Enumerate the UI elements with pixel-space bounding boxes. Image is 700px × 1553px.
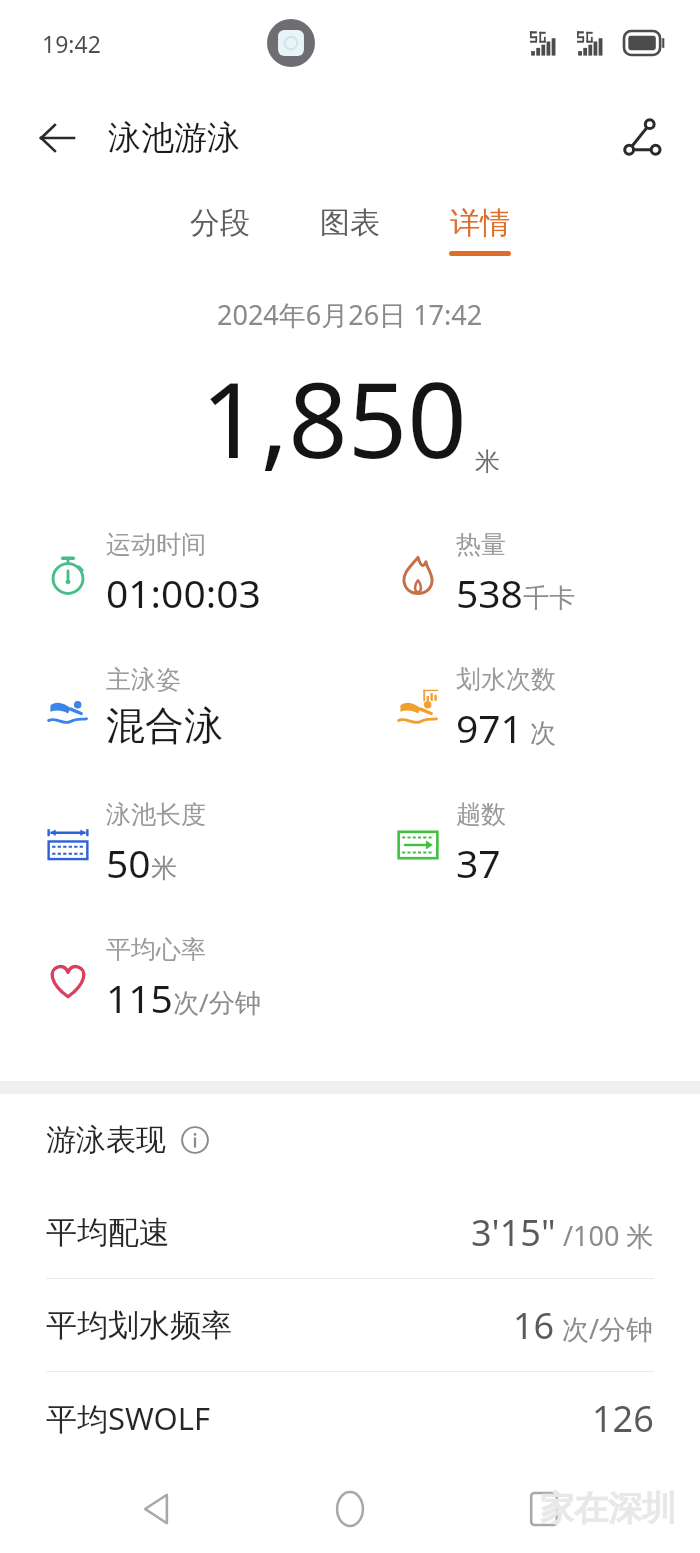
staticText: 538 — [456, 566, 523, 619]
button[interactable]: 平均划水频率 — [0, 1279, 700, 1371]
staticText: 2024年6月26日 17:42 — [217, 296, 483, 333]
button[interactable]: 分段 — [181, 200, 259, 260]
staticText: 米 — [151, 852, 177, 885]
button[interactable]: 趟数 — [350, 789, 700, 924]
button[interactable]: 运动时间 — [0, 519, 350, 654]
staticText: 图表 — [320, 204, 380, 242]
staticText: 泳池长度 — [106, 799, 206, 830]
button[interactable]: 详情 — [441, 200, 519, 260]
button[interactable]: 泳池长度 — [0, 789, 350, 924]
button[interactable]: Back — [28, 109, 86, 167]
staticText: 分段 — [190, 204, 250, 242]
button[interactable]: Share — [612, 107, 674, 169]
button[interactable]: 主泳姿 — [0, 654, 350, 789]
staticText: 115 — [106, 971, 173, 1024]
staticText: 运动时间 — [106, 529, 206, 560]
staticText: 16 — [513, 1301, 555, 1350]
staticText: 次/分钟 — [173, 984, 261, 1020]
button[interactable]: 平均SWOLF — [0, 1372, 700, 1464]
staticText: 3'15" — [471, 1208, 556, 1257]
staticText: 平均SWOLF — [46, 1397, 211, 1439]
staticText: 平均心率 — [106, 934, 206, 965]
staticText: 趟数 — [456, 799, 506, 830]
staticText: 01:00:03 — [106, 566, 261, 619]
button[interactable]: Back — [118, 1471, 194, 1547]
staticText: 米 — [475, 446, 500, 477]
button[interactable]: 平均心率 — [0, 924, 350, 1059]
staticText: 19:42 — [42, 28, 101, 59]
staticText: 详情 — [450, 204, 510, 242]
button[interactable]: 划水次数 — [350, 654, 700, 789]
staticText: 划水次数 — [456, 664, 556, 695]
staticText: 主泳姿 — [106, 664, 181, 695]
staticText: 971 — [456, 701, 523, 754]
staticText: 泳池游泳 — [108, 117, 240, 159]
staticText: 家在深圳 — [540, 1487, 676, 1530]
staticText: 37 — [456, 836, 501, 889]
staticText: 次 — [523, 714, 556, 750]
staticText: 游泳表现 — [46, 1121, 166, 1159]
button[interactable]: Home — [312, 1471, 388, 1547]
staticText: 次/分钟 — [555, 1310, 654, 1347]
staticText: /100 米 — [556, 1217, 654, 1254]
staticText: 平均划水频率 — [46, 1306, 232, 1345]
button[interactable]: Info — [178, 1123, 212, 1157]
staticText: 平均配速 — [46, 1213, 170, 1252]
button[interactable]: 热量 — [350, 519, 700, 654]
staticText: 1,850 — [201, 347, 467, 489]
staticText: 混合泳 — [106, 701, 223, 750]
staticText: 热量 — [456, 529, 506, 560]
button[interactable]: Recents — [506, 1471, 582, 1547]
staticText: 50 — [106, 836, 151, 889]
button[interactable]: 图表 — [311, 200, 389, 260]
staticText: 126 — [592, 1394, 654, 1443]
button[interactable]: 平均配速 — [0, 1186, 700, 1278]
staticText: 千卡 — [523, 582, 575, 615]
